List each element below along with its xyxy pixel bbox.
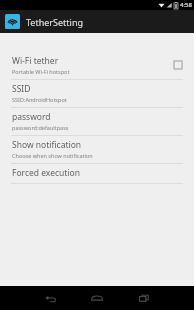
staticText: password:defaultpass [12,124,69,131]
staticText: Forced execution [12,167,80,179]
button[interactable]: Forced execution [0,164,194,183]
button[interactable]: Show notification [0,136,194,163]
staticText: 4:58 [180,1,192,9]
other: App icon [5,14,20,29]
staticText: Choose when show notification [12,152,93,159]
button[interactable]: Wi-Fi tether toggle [172,59,184,71]
staticText: Portable Wi-Fi hotspot [12,68,70,75]
button[interactable]: SSID [0,80,194,107]
button[interactable]: Wi-Fi tether [0,52,194,79]
staticText: SSID [12,83,31,95]
button[interactable]: Home [85,286,109,310]
staticText: password [12,111,51,123]
staticText: SSID:AndroidHotspot [12,96,67,103]
staticText: Show notification [12,139,82,151]
staticText: Wi-Fi tether [12,55,59,67]
button[interactable]: password [0,108,194,135]
staticText: TetherSetting [26,16,83,28]
button[interactable]: Recent apps [132,286,156,310]
button[interactable]: Back [38,286,62,310]
